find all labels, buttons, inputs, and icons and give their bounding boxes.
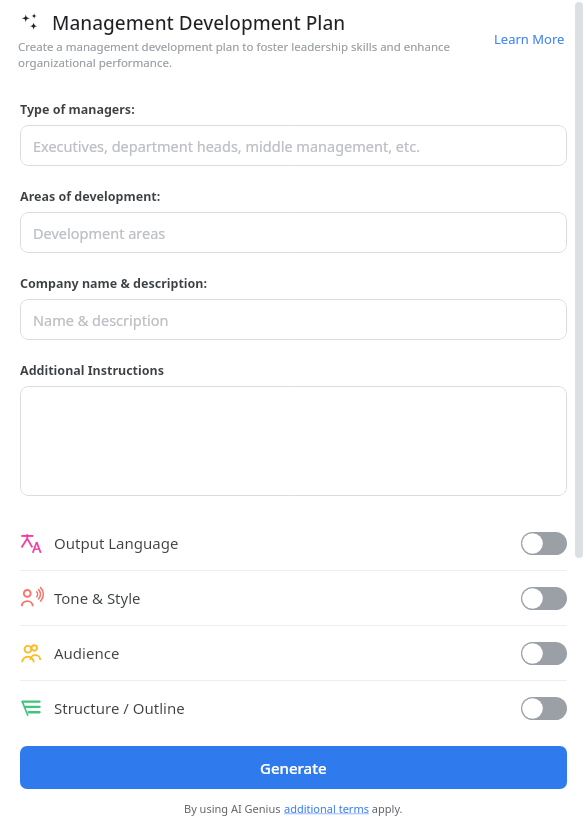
staticText: Management Development Plan: [52, 10, 346, 36]
staticText: Areas of development:: [20, 188, 161, 205]
button[interactable]: Toggle: [521, 587, 567, 610]
button[interactable]: Name & description: [20, 299, 567, 340]
staticText: Company name & description:: [20, 275, 207, 292]
staticText: Name & description: [33, 310, 169, 330]
staticText: Executives, department heads, middle man…: [33, 136, 421, 156]
staticText: additional terms: [284, 801, 369, 816]
staticText: Type of managers:: [20, 101, 135, 118]
button[interactable]: Toggle: [521, 697, 567, 720]
staticText: Learn More: [494, 30, 565, 48]
button[interactable]: Executives, department heads, middle man…: [20, 125, 567, 166]
staticText: apply.: [369, 801, 403, 816]
staticText: Additional Instructions: [20, 362, 164, 379]
staticText: Audience: [54, 643, 521, 663]
button[interactable]: Learn More: [492, 28, 567, 50]
button[interactable]: Toggle: [521, 532, 567, 555]
button[interactable]: Toggle: [521, 642, 567, 665]
button[interactable]: Development areas: [20, 212, 567, 253]
button[interactable]: [20, 386, 567, 496]
button[interactable]: additional terms: [284, 801, 369, 816]
button[interactable]: Audience: [0, 626, 587, 680]
button[interactable]: Generate: [20, 746, 567, 789]
button[interactable]: Structure / Outline: [0, 681, 587, 735]
staticText: Output Language: [54, 533, 521, 553]
staticText: By using AI Genius: [184, 801, 284, 816]
staticText: Development areas: [33, 223, 166, 243]
staticText: Generate: [260, 758, 327, 778]
staticText: Structure / Outline: [54, 698, 521, 718]
button[interactable]: Tone & Style: [0, 571, 587, 625]
staticText: Tone & Style: [54, 588, 521, 608]
staticText: Create a management development plan to …: [18, 39, 457, 70]
button[interactable]: Output Language: [0, 516, 587, 570]
